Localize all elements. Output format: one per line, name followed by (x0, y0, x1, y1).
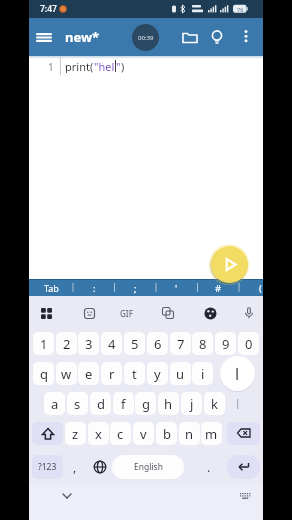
staticText: w (61, 365, 72, 383)
button[interactable]: w (56, 362, 77, 385)
button[interactable] (57, 488, 77, 504)
staticText: x (95, 425, 102, 443)
button[interactable] (38, 305, 55, 321)
staticText: r (109, 365, 115, 383)
button[interactable] (159, 305, 176, 321)
staticText: u (176, 365, 185, 383)
button[interactable]: z (65, 422, 86, 445)
staticText: 4 (108, 335, 116, 353)
button[interactable]: i (192, 362, 213, 385)
button[interactable]: n (179, 422, 200, 445)
button[interactable]: r (101, 362, 122, 385)
staticText: 0 (245, 335, 253, 353)
staticText: ( (259, 282, 262, 295)
button[interactable]: y (147, 362, 168, 385)
button[interactable]: f (113, 392, 134, 415)
staticText: v (140, 425, 147, 443)
staticText: e (85, 365, 93, 383)
button[interactable] (89, 455, 110, 479)
staticText: print( (65, 59, 94, 73)
button[interactable] (235, 488, 255, 504)
button[interactable]: 0 (238, 332, 259, 355)
staticText: ; (134, 282, 137, 295)
staticText: , (73, 459, 77, 475)
button[interactable]: s (67, 392, 88, 415)
staticText: # (215, 282, 222, 295)
button[interactable]: 1 (33, 332, 54, 355)
staticText: g (142, 395, 150, 413)
staticText: 7:47 (40, 3, 57, 15)
button[interactable]: t (124, 362, 145, 385)
button[interactable]: a (44, 392, 65, 415)
staticText: ' (175, 282, 178, 295)
staticText: ?123 (38, 461, 57, 473)
button[interactable]: 6 (147, 332, 168, 355)
button[interactable]: 9 (215, 332, 236, 355)
button[interactable]: h (158, 392, 179, 415)
button[interactable]: m (201, 422, 222, 445)
button[interactable]: k (204, 392, 225, 415)
staticText: q (40, 365, 48, 383)
button[interactable]: u (170, 362, 191, 385)
staticText: . (207, 459, 211, 475)
staticText: m (205, 425, 218, 443)
button[interactable] (227, 422, 260, 445)
button[interactable]: English (112, 455, 184, 479)
button[interactable]: c (110, 422, 131, 445)
button[interactable] (227, 455, 260, 479)
staticText: f (121, 395, 126, 413)
staticText: 3 (85, 335, 93, 353)
staticText: 8 (199, 335, 207, 353)
staticText: " (116, 59, 121, 73)
button[interactable]: j (181, 392, 202, 415)
button[interactable]: ?123 (32, 455, 63, 479)
button[interactable] (211, 246, 248, 283)
staticText: 00:39 (138, 34, 154, 42)
button[interactable] (235, 25, 257, 49)
button[interactable] (240, 305, 257, 321)
button[interactable]: e (78, 362, 99, 385)
button[interactable]: 4 (101, 332, 122, 355)
staticText: t (132, 365, 137, 383)
staticText: 7 (177, 335, 185, 353)
button[interactable]: g (135, 392, 156, 415)
button[interactable]: 3 (78, 332, 99, 355)
button[interactable]: 7 (170, 332, 191, 355)
staticText: z (72, 425, 79, 443)
staticText: j (190, 395, 194, 413)
staticText: b (163, 425, 171, 443)
button[interactable]: q (33, 362, 54, 385)
button[interactable] (81, 305, 98, 321)
staticText: new* (65, 28, 100, 46)
staticText: i (201, 365, 205, 383)
staticText: Tab (44, 282, 59, 294)
staticText: 2 (63, 335, 71, 353)
staticText: 5 (131, 335, 139, 353)
staticText: h (164, 395, 173, 413)
button[interactable]: v (133, 422, 154, 445)
staticText: : (93, 282, 96, 295)
button[interactable]: 8 (192, 332, 213, 355)
staticText: 9 (222, 335, 230, 353)
staticText: 1 (48, 60, 54, 72)
staticText: ) (121, 59, 125, 73)
button[interactable]: d (90, 392, 111, 415)
staticText: k (211, 395, 218, 413)
staticText: GIF (120, 308, 133, 319)
staticText: English (134, 461, 163, 473)
staticText: l (236, 396, 240, 412)
button[interactable] (202, 305, 219, 321)
button[interactable]: 2 (56, 332, 77, 355)
staticText: 76 (237, 6, 244, 13)
button[interactable] (33, 25, 55, 49)
button[interactable] (178, 25, 202, 49)
button[interactable] (32, 422, 63, 445)
staticText: 1 (40, 335, 48, 353)
button[interactable]: b (156, 422, 177, 445)
staticText: y (154, 365, 161, 383)
staticText: s (74, 395, 81, 413)
button[interactable]: x (88, 422, 109, 445)
button[interactable]: 5 (124, 332, 145, 355)
staticText: n (185, 425, 194, 443)
button[interactable] (205, 25, 229, 49)
